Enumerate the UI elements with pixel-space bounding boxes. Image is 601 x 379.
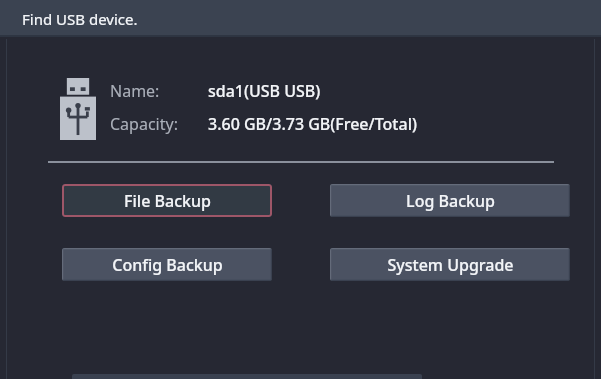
staticText: Config Backup [112,254,223,276]
staticText: Find USB device. [22,9,138,29]
button[interactable]: Config Backup [62,248,272,281]
button[interactable]: File Backup [62,184,272,217]
staticText: File Backup [124,190,211,212]
staticText: Capacity: [110,113,178,135]
staticText: sda1(USB USB) [208,80,321,102]
button[interactable]: System Upgrade [330,248,570,281]
staticText: System Upgrade [387,254,514,276]
staticText: Name: [110,80,160,102]
staticText: Log Backup [406,190,495,212]
staticText: 3.60 GB/3.73 GB(Free/Total) [208,113,417,135]
button[interactable]: Log Backup [330,184,570,217]
